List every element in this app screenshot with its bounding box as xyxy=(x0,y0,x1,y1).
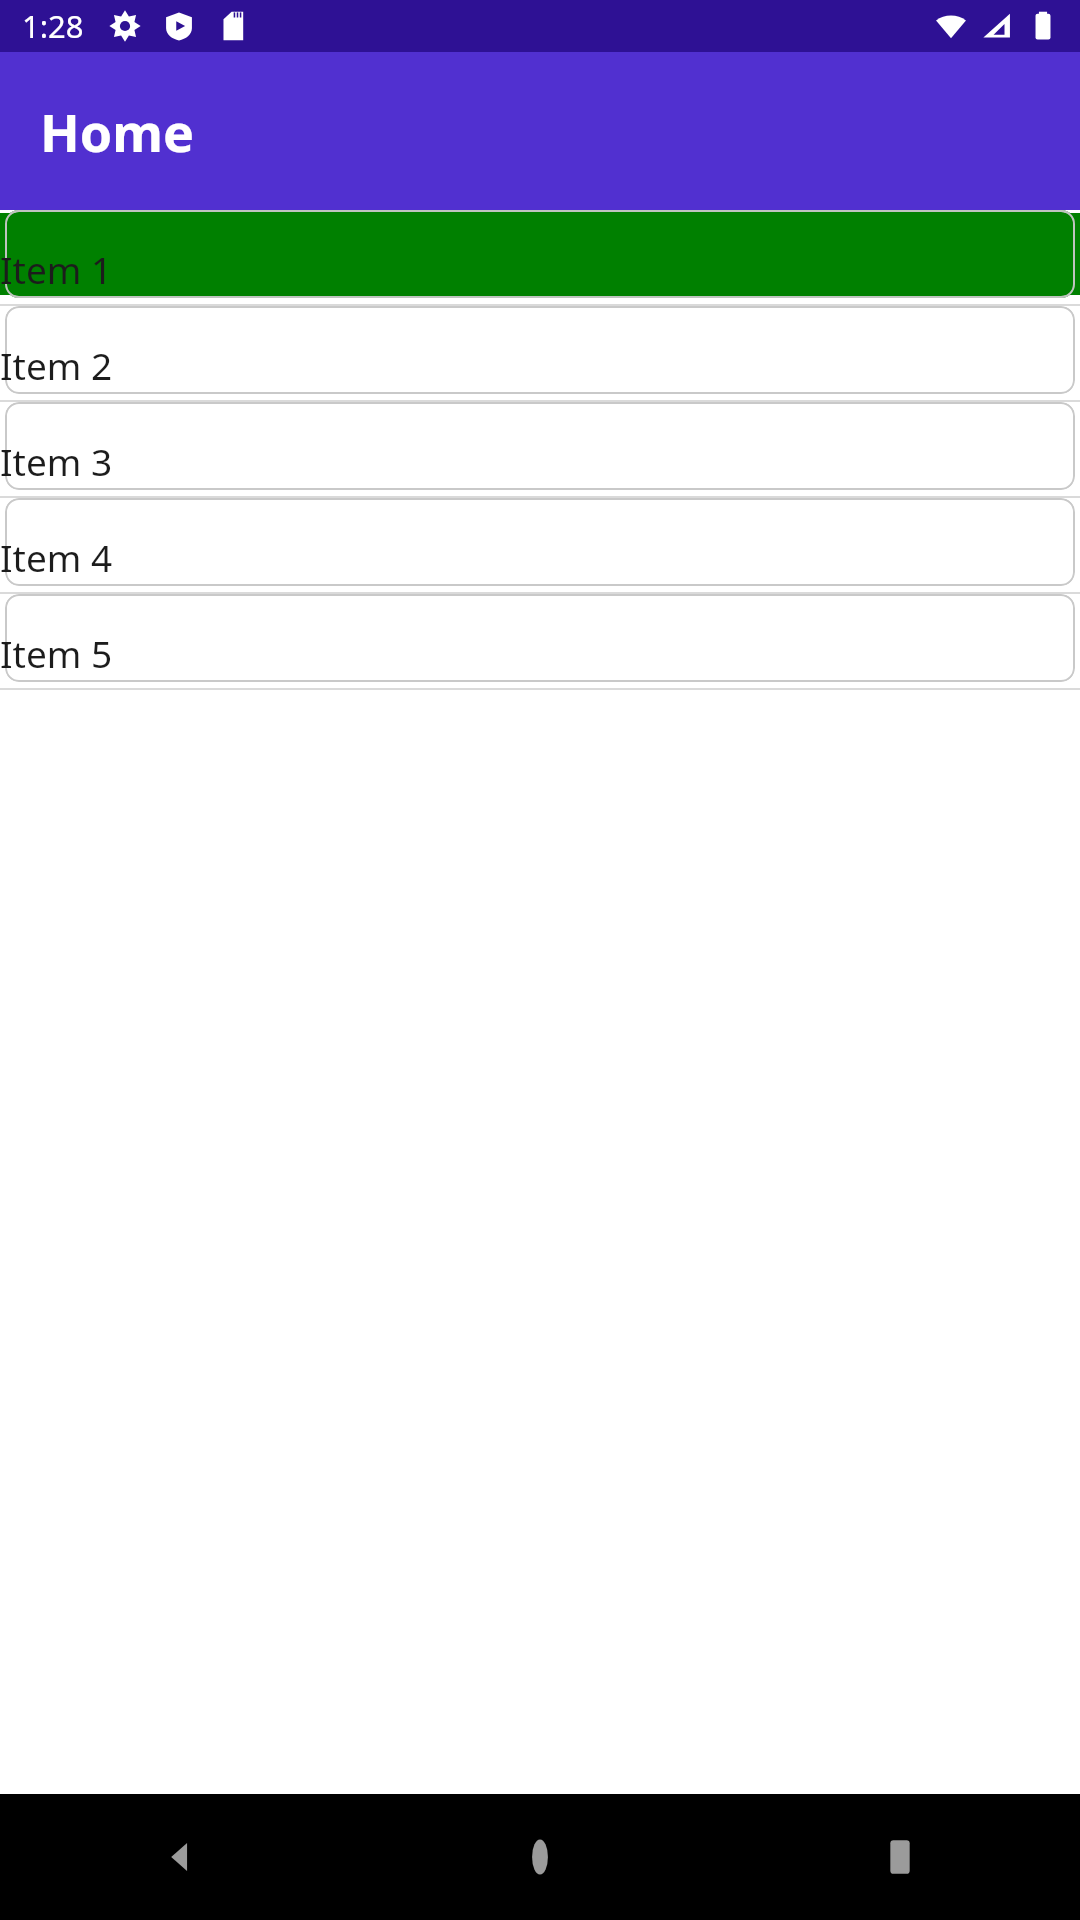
staticText: Home xyxy=(40,96,195,167)
staticText: Item 2 xyxy=(0,340,113,390)
staticText: Item 1 xyxy=(0,244,113,294)
button[interactable]: Item 4 xyxy=(0,498,1080,594)
button[interactable]: Back xyxy=(0,1794,360,1920)
button[interactable]: Item 3 xyxy=(0,402,1080,498)
staticText: 1:28 xyxy=(22,5,84,47)
button[interactable]: Item 1 xyxy=(0,210,1080,306)
button[interactable]: Item 2 xyxy=(0,306,1080,402)
staticText: Item 4 xyxy=(0,532,113,582)
button[interactable]: Recent apps xyxy=(720,1794,1080,1920)
button[interactable]: Home xyxy=(360,1794,720,1920)
staticText: Item 3 xyxy=(0,436,113,486)
staticText: Item 5 xyxy=(0,628,113,678)
button[interactable]: Item 5 xyxy=(0,594,1080,690)
